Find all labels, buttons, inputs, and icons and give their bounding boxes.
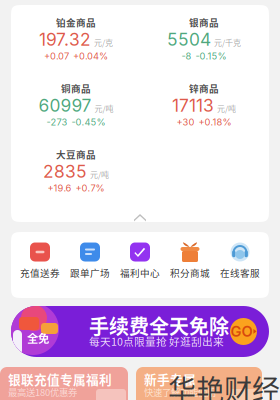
button[interactable]: 积分商城 bbox=[165, 242, 215, 288]
button[interactable]: 铜商品 bbox=[12, 82, 140, 148]
staticText: 手续费全天免除 bbox=[89, 311, 229, 340]
staticText: -273 bbox=[46, 116, 67, 128]
staticText: 全免 bbox=[27, 330, 49, 346]
button[interactable]: 银联充值专属福利 bbox=[0, 367, 128, 400]
staticText: -8 bbox=[181, 50, 191, 62]
button[interactable]: 银商品 bbox=[140, 16, 268, 82]
staticText: 60997 bbox=[38, 95, 91, 116]
staticText: 锌商品 bbox=[189, 81, 219, 95]
staticText: 元/吨 bbox=[94, 102, 113, 114]
button[interactable]: 在线客服 bbox=[215, 242, 265, 288]
staticText: 元/千克 bbox=[214, 36, 241, 48]
staticText: 元/吨 bbox=[90, 168, 109, 180]
staticText: 铜商品 bbox=[61, 81, 91, 95]
staticText: +0.07 bbox=[44, 50, 69, 62]
staticText: 17113 bbox=[172, 95, 214, 116]
staticText: 积分商城 bbox=[170, 265, 210, 279]
staticText: 福利中心 bbox=[120, 265, 160, 279]
button[interactable]: 锌商品 bbox=[140, 82, 268, 148]
staticText: 元/吨 bbox=[217, 102, 236, 114]
button[interactable]: 福利中心 bbox=[115, 242, 165, 288]
staticText: -0.15% bbox=[195, 50, 226, 62]
staticText: 银联充值专属福利 bbox=[8, 370, 112, 388]
staticText: 跟单广场 bbox=[70, 265, 110, 279]
staticText: 最高送180优惠券 bbox=[8, 385, 77, 399]
button[interactable]: 大豆商品 bbox=[12, 148, 140, 214]
staticText: 197.32 bbox=[39, 29, 91, 50]
staticText: 银商品 bbox=[189, 15, 219, 29]
staticText: +30 bbox=[176, 116, 194, 128]
button[interactable]: 新手专属 bbox=[136, 367, 262, 400]
staticText: 充值送券 bbox=[20, 265, 60, 279]
button[interactable]: 跟单广场 bbox=[65, 242, 115, 288]
staticText: 5504 bbox=[167, 29, 211, 50]
staticText: 元/克 bbox=[94, 36, 113, 48]
staticText: 2835 bbox=[43, 161, 87, 182]
staticText: 大豆商品 bbox=[56, 147, 96, 161]
staticText: GO bbox=[230, 323, 252, 340]
button[interactable]: 收起 bbox=[12, 214, 268, 222]
staticText: 铂金商品 bbox=[56, 15, 96, 29]
staticText: +0.18% bbox=[198, 116, 231, 128]
button[interactable]: 充值送券 bbox=[15, 242, 65, 288]
button[interactable]: 铂金商品 bbox=[12, 16, 140, 82]
staticText: +0.7% bbox=[75, 182, 104, 194]
staticText: 快速了解功能使用 bbox=[144, 385, 216, 399]
staticText: +19.6 bbox=[47, 182, 71, 194]
staticText: 华艳财经 bbox=[168, 368, 280, 400]
staticText: 每天10点限量抢 好逛刮出来 bbox=[89, 333, 224, 349]
button[interactable]: 全免 bbox=[11, 306, 269, 357]
staticText: 在线客服 bbox=[220, 265, 260, 279]
staticText: 新手专属 bbox=[144, 370, 196, 388]
staticText: +0.04% bbox=[73, 50, 108, 62]
staticText: -0.45% bbox=[71, 116, 105, 128]
